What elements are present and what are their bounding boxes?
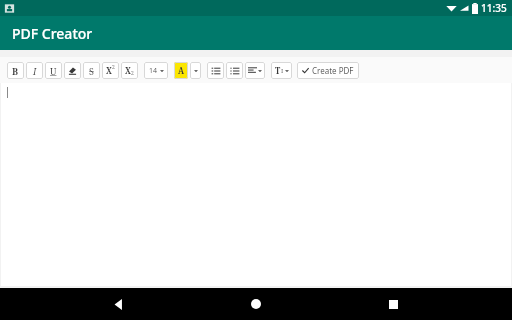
button[interactable]: Superscript — [102, 62, 119, 79]
button[interactable]: Back — [101, 288, 137, 320]
button[interactable]: Bulleted list — [207, 62, 224, 79]
button[interactable]: Subscript — [121, 62, 138, 79]
staticText: A — [178, 65, 185, 76]
staticText: I — [281, 67, 284, 75]
button[interactable]: Text color menu — [190, 62, 201, 79]
staticText: Create PDF — [312, 65, 354, 76]
staticText: X — [106, 65, 112, 76]
staticText: PDF Creator — [12, 24, 93, 43]
staticText: 2 — [131, 70, 134, 77]
staticText: B — [12, 65, 19, 77]
button[interactable]: Italic — [26, 62, 43, 79]
button[interactable]: Alignment — [245, 62, 265, 79]
button[interactable]: Underline — [45, 62, 62, 79]
button[interactable]: Text format — [271, 62, 292, 79]
button[interactable]: Highlight color — [64, 62, 81, 79]
staticText: I — [33, 65, 37, 77]
staticText: U — [50, 65, 57, 77]
button[interactable]: Strikethrough — [83, 62, 100, 79]
button[interactable]: Font size — [144, 62, 168, 79]
button[interactable]: Home — [238, 288, 274, 320]
staticText: 11:35 — [481, 1, 507, 15]
staticText: T — [275, 65, 281, 76]
button[interactable]: Create PDF — [297, 62, 359, 79]
staticText: S — [89, 65, 94, 77]
staticText: X — [125, 65, 131, 76]
button[interactable]: Numbered list — [226, 62, 243, 79]
staticText: 2 — [112, 64, 115, 71]
button[interactable]: Bold — [7, 62, 24, 79]
staticText: 14 — [149, 66, 158, 76]
button[interactable]: Recents — [375, 288, 411, 320]
button[interactable]: Text color — [174, 62, 188, 79]
